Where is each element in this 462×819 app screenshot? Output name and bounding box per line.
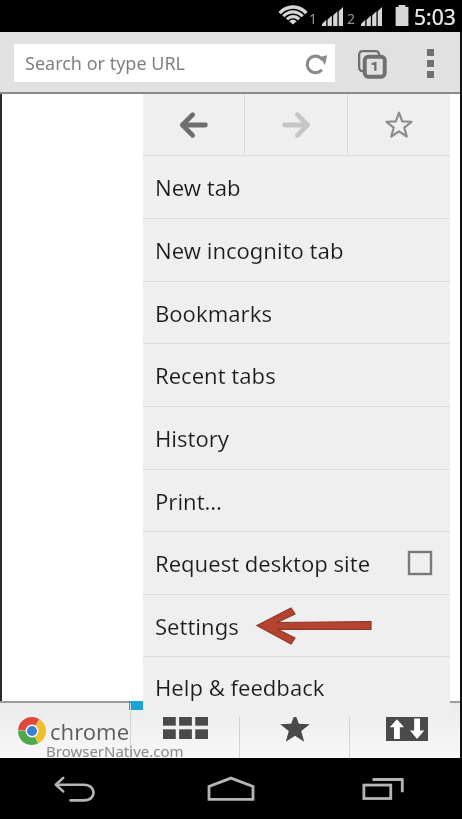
button[interactable]: Search or type URL — [14, 44, 335, 82]
staticText: New tab — [155, 172, 241, 202]
staticText: History — [155, 423, 230, 453]
button[interactable]: Bookmarks — [240, 703, 349, 758]
staticText: 2 — [347, 9, 356, 28]
staticText: Help & feedback — [155, 672, 325, 702]
button[interactable]: Tabs — [352, 44, 390, 82]
staticText: BrowserNative.com — [46, 741, 184, 761]
button[interactable]: Back — [0, 758, 154, 819]
button[interactable]: New incognito tab — [143, 218, 450, 281]
button[interactable]: Bookmark — [348, 94, 450, 155]
staticText: chrome — [50, 716, 130, 746]
button[interactable]: New tab — [143, 155, 450, 218]
button[interactable]: More options — [411, 44, 449, 82]
button[interactable]: Bookmarks — [143, 281, 450, 344]
button[interactable]: Home — [154, 758, 308, 819]
button[interactable]: History — [143, 406, 450, 469]
staticText: Settings — [155, 611, 239, 641]
staticText: 1 — [309, 9, 318, 28]
staticText: Recent tabs — [155, 360, 276, 390]
staticText: 5:03 — [414, 3, 456, 32]
button[interactable]: Settings — [143, 594, 450, 657]
button[interactable]: Request desktop site — [143, 531, 450, 594]
staticText: Bookmarks — [155, 298, 272, 328]
staticText: Search or type URL — [25, 51, 186, 76]
staticText: New incognito tab — [155, 235, 344, 265]
button[interactable]: Forward — [245, 94, 347, 155]
button[interactable]: Recents — [308, 758, 462, 819]
button[interactable]: Most visited — [131, 703, 239, 758]
button[interactable]: Recent tabs — [143, 343, 450, 406]
staticText: Print… — [155, 486, 223, 516]
button[interactable]: Back — [143, 94, 244, 155]
button[interactable]: Print… — [143, 469, 450, 532]
staticText: Request desktop site — [155, 548, 371, 578]
other: Reload — [304, 52, 327, 75]
button[interactable]: Help & feedback — [143, 656, 450, 717]
button[interactable]: Other devices — [350, 703, 462, 758]
button[interactable]: chrome — [0, 703, 130, 758]
